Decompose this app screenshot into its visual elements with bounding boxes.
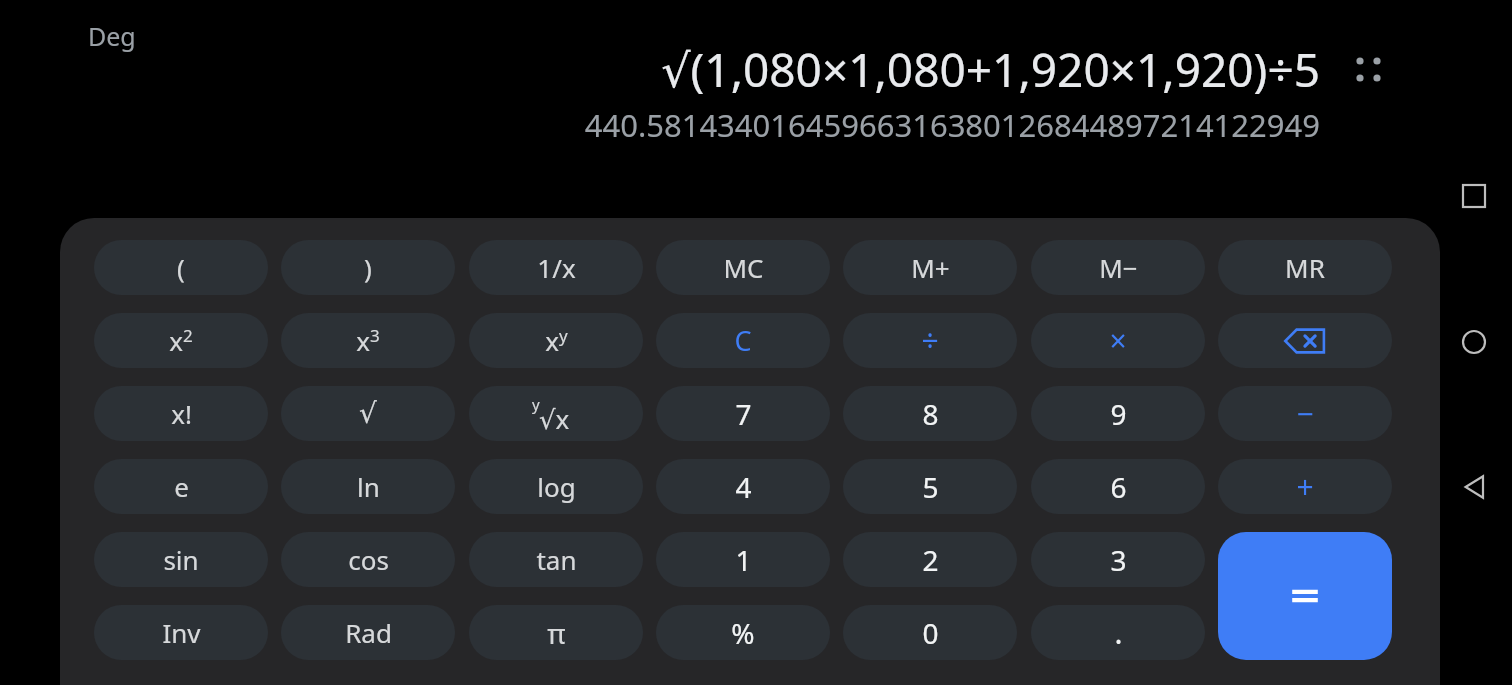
button[interactable]: ( [94,240,268,295]
button[interactable]: 1/x [469,240,643,295]
button[interactable]: log [469,459,643,514]
staticText: 1 [735,541,752,579]
staticText: M+ [911,250,950,285]
staticText: 9 [1110,395,1127,433]
button[interactable]: Rad [281,605,455,660]
button[interactable]: π [469,605,643,660]
button[interactable]: 2 [843,532,1017,587]
staticText: cos [348,542,389,577]
staticText: ln [357,469,380,504]
button[interactable]: Equals [1218,532,1392,660]
staticText: e [174,469,189,504]
staticText: x3 [356,323,380,358]
staticText: . [1114,612,1123,653]
button[interactable]: ) [281,240,455,295]
button[interactable]: Inv [94,605,268,660]
staticText: x2 [169,323,193,358]
staticText: 440.581434016459663163801268448972141229… [584,104,1320,146]
button[interactable]: % [656,605,830,660]
button[interactable]: 6 [1031,459,1205,514]
staticText: MR [1285,250,1325,285]
button[interactable]: nth root [469,386,643,441]
button[interactable]: x! [94,386,268,441]
staticText: sin [163,542,199,577]
staticText: 2 [922,541,939,579]
staticText: Deg [88,19,136,53]
staticText: log [537,469,576,504]
button[interactable]: x3 [281,313,455,368]
button[interactable]: Back [1459,472,1489,502]
staticText: √ [359,397,377,430]
button[interactable]: ln [281,459,455,514]
button[interactable]: xy [469,313,643,368]
staticText: Rad [345,615,392,650]
button[interactable]: 8 [843,386,1017,441]
staticText: 4 [735,468,752,506]
button[interactable]: Backspace [1218,313,1392,368]
staticText: tan [536,542,577,577]
staticText: ) [364,250,372,285]
button[interactable]: 9 [1031,386,1205,441]
button[interactable]: 0 [843,605,1017,660]
staticText: Inv [162,615,201,650]
button[interactable]: C [656,313,830,368]
staticText: 1/x [537,250,576,285]
staticText: 0 [922,614,939,652]
button[interactable]: MC [656,240,830,295]
button[interactable]: 7 [656,386,830,441]
button[interactable]: Recents [1459,181,1489,211]
button[interactable]: History [1344,45,1392,93]
staticText: + [1296,466,1314,507]
button[interactable]: tan [469,532,643,587]
button[interactable]: + [1218,459,1392,514]
staticText: √x [539,401,570,436]
staticText: 3 [1110,541,1127,579]
staticText: C [734,322,752,359]
staticText: x! [171,396,192,431]
button[interactable]: e [94,459,268,514]
button[interactable]: 1 [656,532,830,587]
staticText: xy [545,323,568,358]
button[interactable]: × [1031,313,1205,368]
button[interactable]: √ [281,386,455,441]
staticText: y [532,394,540,414]
staticText: 7 [735,395,752,433]
button[interactable]: . [1031,605,1205,660]
button[interactable]: 4 [656,459,830,514]
button[interactable]: cos [281,532,455,587]
button[interactable]: M− [1031,240,1205,295]
button[interactable]: ÷ [843,313,1017,368]
staticText: 5 [922,468,939,506]
button[interactable]: Home [1459,327,1489,357]
staticText: % [731,614,755,652]
button[interactable]: 3 [1031,532,1205,587]
staticText: √(1,080×1,080+1,920×1,920)÷5 [661,38,1320,101]
staticText: π [547,614,566,652]
staticText: − [1296,393,1314,434]
staticText: M− [1099,250,1138,285]
button[interactable]: M+ [843,240,1017,295]
button[interactable]: − [1218,386,1392,441]
button[interactable]: x2 [94,313,268,368]
button[interactable]: sin [94,532,268,587]
staticText: ( [177,250,185,285]
button[interactable]: 5 [843,459,1017,514]
staticText: 6 [1110,468,1127,506]
staticText: ÷ [921,320,939,361]
staticText: × [1109,320,1127,361]
staticText: MC [723,250,764,285]
button[interactable]: MR [1218,240,1392,295]
staticText: 8 [922,395,939,433]
